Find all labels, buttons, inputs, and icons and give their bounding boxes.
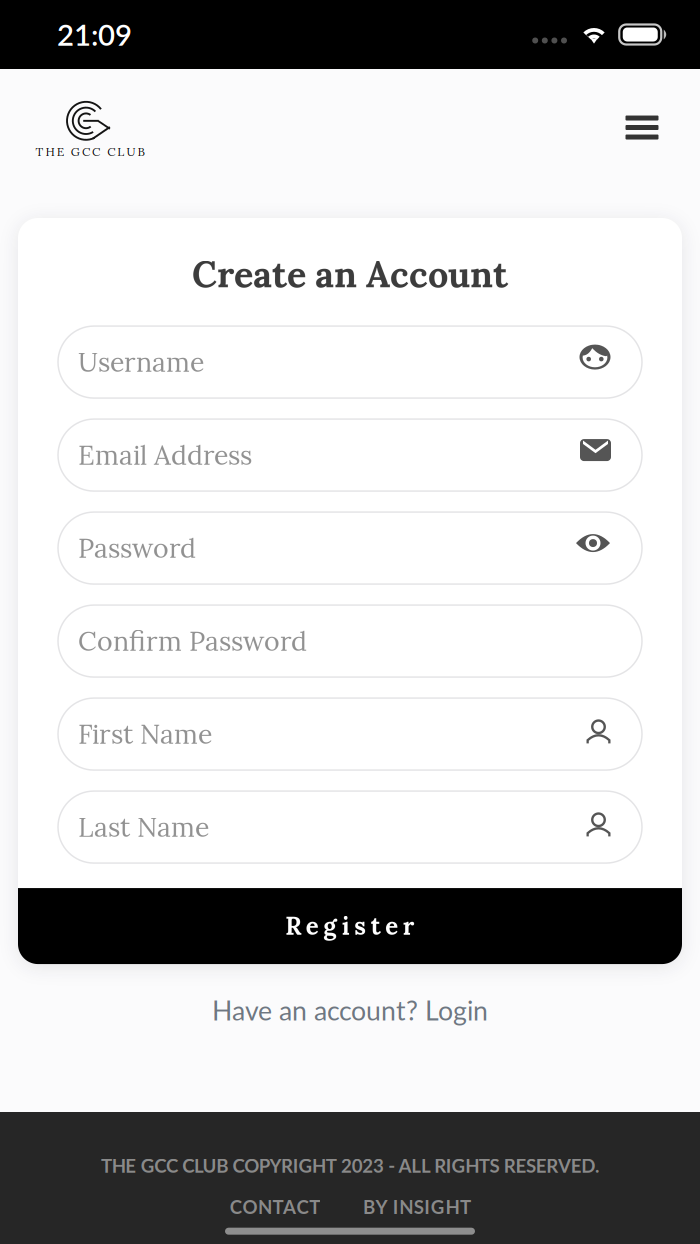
button[interactable]: CONTACT bbox=[227, 1194, 323, 1220]
staticText: Confirm Password bbox=[78, 624, 307, 658]
staticText: Create an Account bbox=[192, 251, 508, 297]
staticText: Username bbox=[78, 345, 204, 379]
staticText: Register bbox=[285, 911, 415, 941]
staticText: Have an account? Login bbox=[212, 994, 488, 1026]
staticText: 21:09 bbox=[57, 17, 132, 52]
staticText: Last Name bbox=[78, 810, 209, 844]
button[interactable]: Have an account? Login bbox=[192, 984, 508, 1036]
staticText: THE GCC CLUB bbox=[35, 144, 145, 159]
button[interactable]: Confirm Password bbox=[58, 605, 642, 677]
button[interactable]: Email Address bbox=[58, 419, 642, 491]
button[interactable]: Register bbox=[18, 888, 682, 964]
button[interactable]: BY INSIGHT bbox=[361, 1194, 473, 1220]
button[interactable]: Password bbox=[58, 512, 642, 584]
staticText: Email Address bbox=[78, 438, 252, 472]
button[interactable]: Last Name bbox=[58, 791, 642, 863]
button[interactable]: Username bbox=[58, 326, 642, 398]
staticText: First Name bbox=[78, 717, 212, 751]
button[interactable]: Menu bbox=[614, 115, 670, 171]
staticText: Password bbox=[78, 531, 196, 565]
staticText: THE GCC CLUB COPYRIGHT 2023 - ALL RIGHTS… bbox=[101, 1154, 599, 1177]
button[interactable]: First Name bbox=[58, 698, 642, 770]
staticText: BY INSIGHT bbox=[363, 1195, 471, 1218]
staticText: CONTACT bbox=[230, 1195, 320, 1218]
